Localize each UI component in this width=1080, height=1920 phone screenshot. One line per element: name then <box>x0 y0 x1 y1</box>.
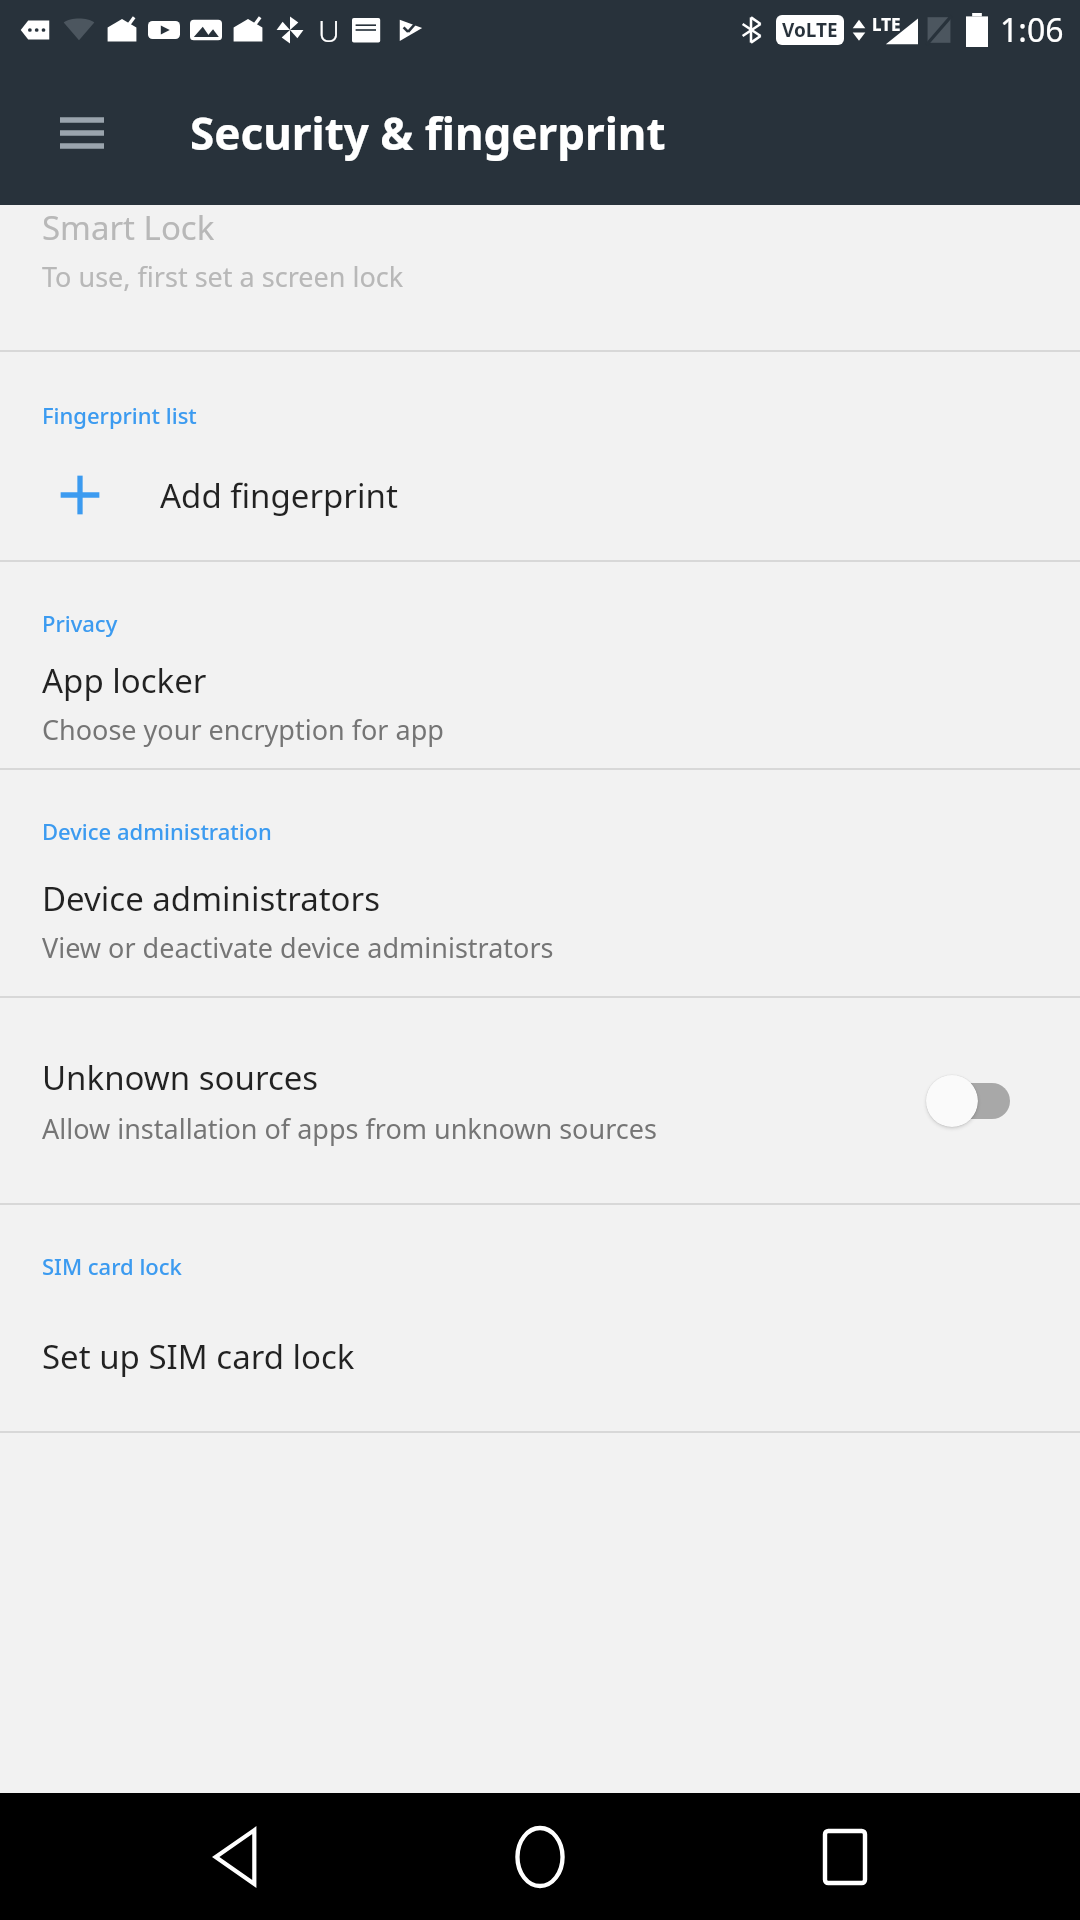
staticText: Fingerprint list <box>42 400 197 430</box>
staticText: LTE <box>872 13 901 36</box>
button[interactable]: Set up SIM card lock <box>0 1281 1080 1431</box>
staticText: U <box>318 10 340 51</box>
button[interactable]: Recent apps <box>770 1793 920 1920</box>
button[interactable]: Smart Lock <box>0 205 1080 350</box>
button[interactable]: Add fingerprint <box>0 430 1080 560</box>
button[interactable]: Home <box>465 1793 615 1920</box>
staticText: Device administration <box>42 816 272 846</box>
staticText: View or deactivate device administrators <box>42 929 554 966</box>
staticText: VoLTE <box>782 17 838 43</box>
button[interactable]: Open navigation menu <box>42 93 122 173</box>
staticText: Add fingerprint <box>160 473 398 518</box>
staticText: Privacy <box>42 608 118 638</box>
staticText: Unknown sources <box>42 1055 319 1100</box>
staticText: Set up SIM card lock <box>42 1334 355 1379</box>
staticText: Allow installation of apps from unknown … <box>42 1110 657 1147</box>
staticText: To use, first set a screen lock <box>42 258 404 295</box>
staticText: Device administrators <box>42 876 380 921</box>
button[interactable]: Unknown sources toggle, off <box>926 1069 1022 1133</box>
button[interactable]: App locker <box>0 638 1080 768</box>
staticText: App locker <box>42 658 207 703</box>
staticText: Security & fingerprint <box>190 103 666 163</box>
staticText: Choose your encryption for app <box>42 711 444 748</box>
button[interactable]: Back <box>160 1793 310 1920</box>
staticText: 1:06 <box>1000 8 1064 52</box>
staticText: Smart Lock <box>42 205 215 250</box>
staticText: SIM card lock <box>42 1251 182 1281</box>
button[interactable]: Unknown sources <box>0 998 1080 1203</box>
button[interactable]: Device administrators <box>0 846 1080 996</box>
